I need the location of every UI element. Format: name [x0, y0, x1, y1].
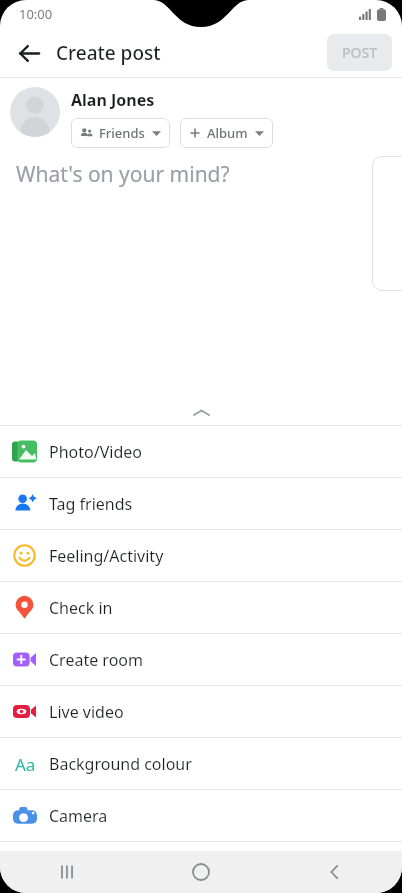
staticText: What's on your mind? [16, 160, 230, 189]
button[interactable]: Recents [0, 851, 134, 893]
button[interactable]: Camera [0, 790, 402, 841]
button[interactable]: Feeling/Activity [0, 530, 402, 581]
staticText: Friends [99, 124, 145, 142]
staticText: Album [207, 124, 248, 142]
staticText: Live video [49, 701, 124, 723]
staticText: Background colour [49, 753, 192, 775]
button[interactable]: Live video [0, 686, 402, 737]
staticText: Alan Jones [71, 89, 155, 111]
staticText: Check in [49, 597, 113, 619]
button[interactable]: Photo/Video [0, 426, 402, 477]
button[interactable]: Back [268, 851, 402, 893]
button[interactable]: Aa [0, 738, 402, 789]
button[interactable]: Friends [71, 118, 170, 148]
staticText: Tag friends [49, 493, 133, 515]
staticText: Camera [49, 805, 108, 827]
staticText: Feeling/Activity [49, 545, 164, 567]
button[interactable]: Tag friends [0, 478, 402, 529]
staticText: 10:00 [19, 5, 53, 23]
staticText: Create post [56, 40, 161, 66]
button[interactable]: Home [134, 851, 268, 893]
button[interactable]: Album [180, 118, 273, 148]
staticText: Photo/Video [49, 441, 142, 463]
button[interactable]: POST [327, 34, 392, 71]
button[interactable]: Back [8, 32, 50, 74]
button[interactable]: Create room [0, 634, 402, 685]
button[interactable]: Collapse [0, 400, 402, 425]
staticText: Aa [15, 753, 36, 776]
button[interactable]: Check in [0, 582, 402, 633]
staticText: Create room [49, 649, 143, 671]
staticText: POST [342, 43, 378, 62]
